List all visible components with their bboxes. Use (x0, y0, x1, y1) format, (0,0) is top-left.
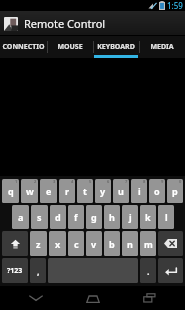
button[interactable]: a (12, 205, 29, 229)
staticText: 0 (179, 179, 182, 184)
staticText: b (109, 238, 115, 250)
button[interactable]: Symbols (2, 258, 28, 283)
staticText: Remote Control (24, 16, 106, 31)
staticText: x (55, 238, 61, 250)
staticText: 4 (71, 179, 74, 184)
button[interactable]: CONNECTION (0, 36, 47, 58)
staticText: i (138, 185, 141, 197)
button[interactable]: Shift (2, 231, 28, 256)
button[interactable]: c (68, 231, 84, 256)
button[interactable]: MOUSE (47, 36, 93, 58)
staticText: 2 (34, 179, 37, 184)
button[interactable]: g (86, 205, 102, 229)
staticText: 1 (15, 179, 18, 184)
staticText: MEDIA (150, 42, 174, 52)
button[interactable]: Home (73, 286, 113, 310)
button[interactable]: j (122, 205, 138, 229)
button[interactable]: , (30, 258, 46, 283)
button[interactable]: MEDIA (139, 36, 185, 58)
staticText: KEYBOARD (97, 42, 135, 52)
staticText: a (18, 211, 24, 223)
staticText: u (118, 185, 124, 197)
staticText: f (74, 211, 78, 223)
button[interactable]: t (77, 179, 93, 203)
button[interactable]: q (2, 179, 19, 203)
staticText: j (129, 211, 132, 223)
staticText: v (91, 238, 97, 250)
button[interactable]: Delete (158, 231, 183, 256)
staticText: y (100, 185, 106, 197)
staticText: g (91, 211, 97, 223)
button[interactable]: o (149, 179, 165, 203)
staticText: d (55, 211, 61, 223)
button[interactable]: Recent apps (129, 286, 169, 310)
staticText: 9 (161, 179, 164, 184)
button[interactable]: Enter (158, 258, 183, 283)
staticText: ?123 (7, 266, 23, 276)
button[interactable]: n (122, 231, 138, 256)
staticText: 7 (125, 179, 128, 184)
staticText: s (37, 211, 42, 223)
staticText: k (145, 211, 151, 223)
staticText: r (65, 185, 70, 197)
staticText: CONNECTION (0, 42, 47, 52)
button[interactable]: Back (16, 286, 56, 310)
staticText: c (74, 238, 79, 250)
button[interactable]: m (140, 231, 156, 256)
button[interactable]: b (104, 231, 120, 256)
staticText: e (46, 185, 52, 197)
button[interactable]: i (131, 179, 147, 203)
button[interactable]: . (140, 258, 156, 283)
button[interactable]: v (86, 231, 102, 256)
button[interactable]: r (59, 179, 75, 203)
staticText: m (144, 238, 153, 250)
button[interactable]: y (95, 179, 111, 203)
staticText: 5 (89, 179, 92, 184)
staticText: 1:59 (167, 0, 183, 11)
staticText: MOUSE (57, 42, 83, 52)
button[interactable]: KEYBOARD (93, 36, 139, 58)
button[interactable]: x (49, 231, 66, 256)
staticText: 3 (53, 179, 56, 184)
staticText: w (26, 185, 34, 197)
staticText: o (154, 185, 160, 197)
staticText: p (172, 185, 178, 197)
button[interactable]: k (140, 205, 156, 229)
button[interactable]: u (113, 179, 129, 203)
button[interactable]: d (50, 205, 66, 229)
button[interactable]: p (167, 179, 183, 203)
button[interactable]: f (68, 205, 84, 229)
button[interactable]: w (21, 179, 38, 203)
staticText: , (37, 265, 40, 277)
button[interactable]: l (158, 205, 174, 229)
button[interactable]: s (31, 205, 48, 229)
staticText: h (109, 211, 115, 223)
button[interactable]: e (40, 179, 57, 203)
staticText: . (147, 265, 150, 277)
staticText: 6 (107, 179, 110, 184)
staticText: l (165, 211, 168, 223)
button[interactable]: h (104, 205, 120, 229)
staticText: z (36, 238, 41, 250)
staticText: q (8, 185, 14, 197)
button[interactable]: z (30, 231, 47, 256)
staticText: 8 (143, 179, 146, 184)
staticText: n (127, 238, 133, 250)
staticText: t (83, 185, 87, 197)
